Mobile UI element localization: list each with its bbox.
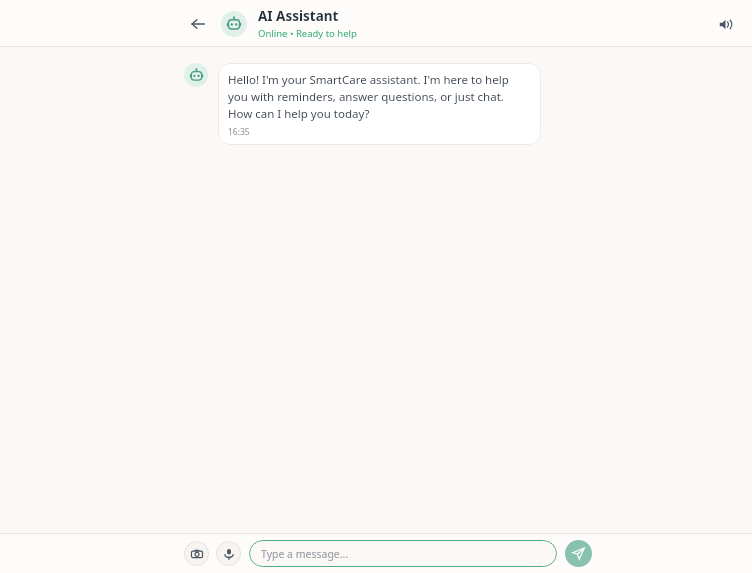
button[interactable]: Back — [186, 12, 210, 36]
button[interactable]: Send message — [565, 540, 592, 567]
button[interactable]: Toggle sound — [712, 11, 738, 37]
button[interactable]: Hello! I'm your SmartCare assistant. I'm… — [218, 63, 541, 145]
button[interactable]: Type a message... — [249, 540, 557, 567]
button[interactable]: Voice input — [216, 541, 241, 566]
staticText: Online • Ready to help — [258, 27, 357, 40]
staticText: Type a message... — [261, 547, 349, 561]
staticText: AI Assistant — [258, 7, 339, 25]
button[interactable]: Camera — [184, 541, 209, 566]
staticText: 16:35 — [228, 126, 250, 138]
staticText: Hello! I'm your SmartCare assistant. I'm… — [228, 72, 529, 122]
